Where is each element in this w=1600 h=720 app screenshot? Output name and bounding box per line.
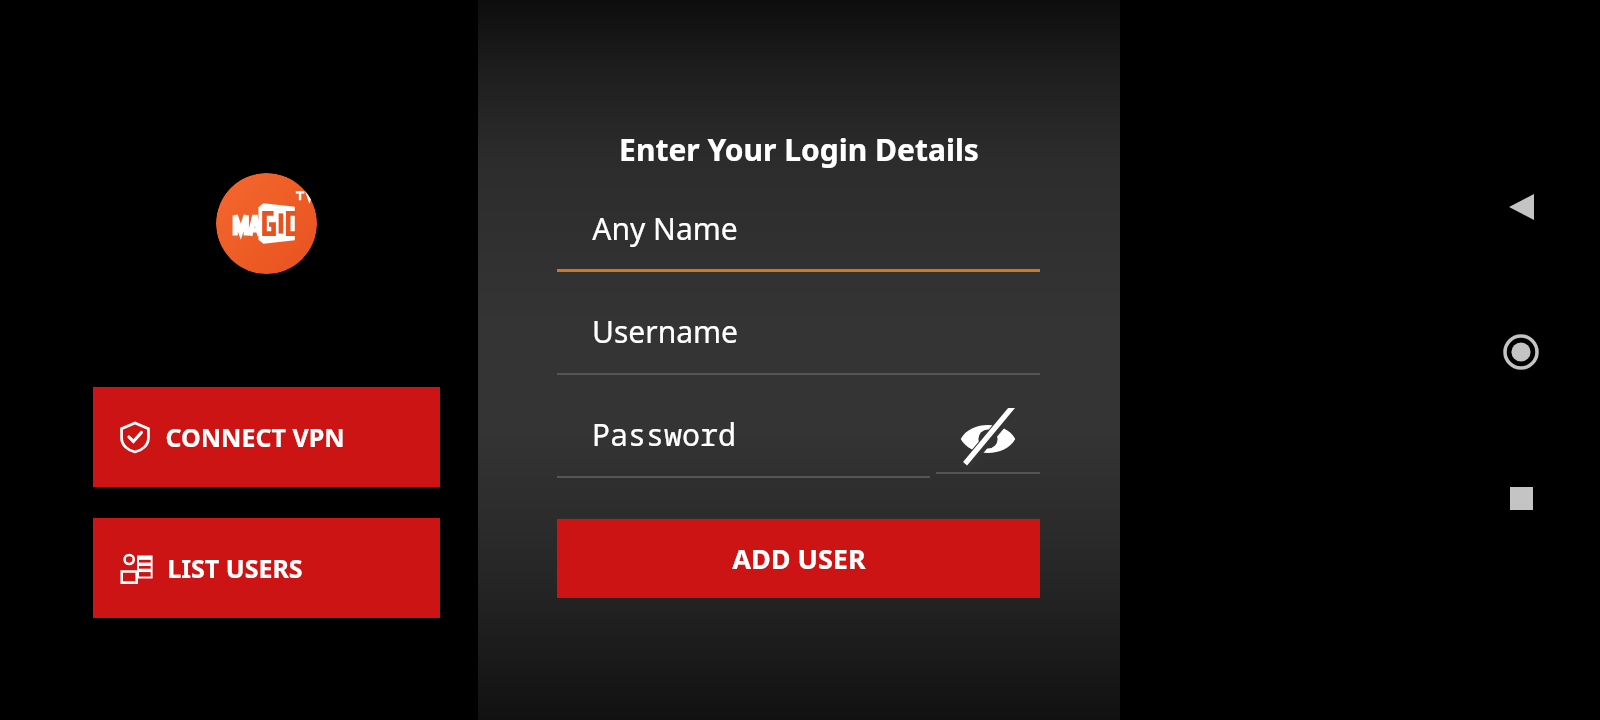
- button[interactable]: Home: [1496, 327, 1546, 377]
- staticText: Username: [592, 311, 738, 352]
- staticText: ADD USER: [732, 540, 866, 577]
- staticText: Password: [592, 414, 736, 455]
- button[interactable]: Username: [557, 303, 1040, 375]
- staticText: Any Name: [592, 208, 738, 249]
- staticText: LIST USERS: [167, 551, 303, 585]
- button[interactable]: CONNECT VPN: [93, 387, 440, 487]
- button[interactable]: Recent apps: [1496, 473, 1546, 523]
- button[interactable]: ADD USER: [557, 519, 1040, 598]
- button[interactable]: Password: [557, 406, 930, 478]
- button[interactable]: Hide password: [936, 400, 1040, 478]
- button[interactable]: LIST USERS: [93, 518, 440, 618]
- staticText: Enter Your Login Details: [619, 129, 979, 170]
- button[interactable]: Back: [1496, 182, 1546, 232]
- button[interactable]: [216, 173, 317, 274]
- staticText: CONNECT VPN: [165, 420, 345, 454]
- button[interactable]: Any Name: [557, 200, 1040, 272]
